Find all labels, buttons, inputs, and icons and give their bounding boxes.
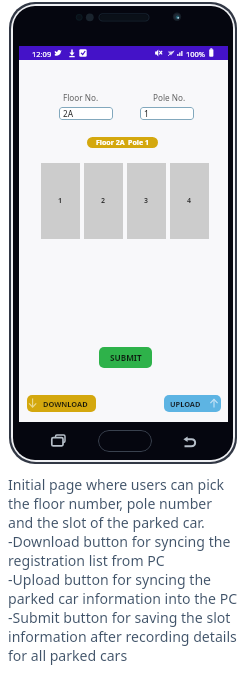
- button[interactable]: 1: [140, 107, 194, 120]
- staticText: 2: [101, 196, 106, 206]
- staticText: Initial page where users can pick the fl…: [8, 475, 238, 665]
- staticText: Floor No.: [63, 92, 99, 103]
- staticText: 1: [58, 196, 63, 206]
- staticText: 1: [144, 108, 149, 119]
- button[interactable]: Home: [98, 430, 152, 452]
- button[interactable]: SUBMIT: [99, 347, 152, 368]
- staticText: Floor 2A Pole 1: [96, 138, 149, 148]
- button[interactable]: UPLOAD: [164, 395, 221, 412]
- button[interactable]: 2A: [59, 107, 113, 120]
- staticText: 3: [144, 196, 149, 206]
- button[interactable]: Floor 2A Pole 1: [87, 137, 158, 148]
- button[interactable]: DOWNLOAD: [27, 395, 96, 412]
- button[interactable]: Back: [182, 434, 198, 450]
- button[interactable]: 2: [84, 163, 123, 239]
- staticText: 2A: [63, 108, 74, 119]
- staticText: DOWNLOAD: [43, 399, 88, 409]
- button[interactable]: 3: [127, 163, 166, 239]
- staticText: UPLOAD: [170, 399, 201, 409]
- staticText: 100%: [186, 49, 206, 59]
- staticText: 12:09: [32, 49, 52, 59]
- staticText: SUBMIT: [110, 352, 142, 363]
- staticText: Pole No.: [153, 92, 186, 103]
- button[interactable]: 1: [41, 163, 80, 239]
- button[interactable]: Recents: [50, 432, 68, 450]
- staticText: 4: [187, 196, 192, 206]
- button[interactable]: 4: [170, 163, 209, 239]
